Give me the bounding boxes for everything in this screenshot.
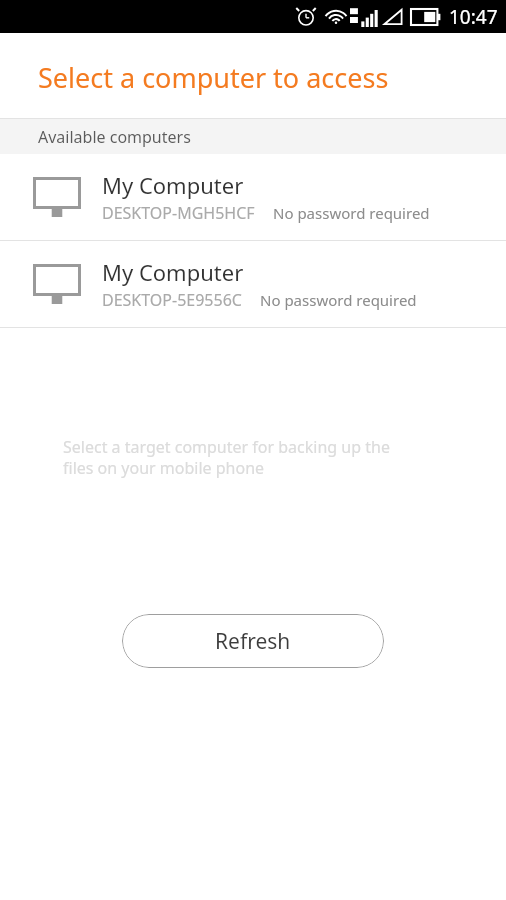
button[interactable]: My Computer bbox=[0, 154, 506, 240]
staticText: No password required bbox=[260, 290, 417, 310]
button[interactable]: My Computer bbox=[0, 241, 506, 327]
staticText: 10:47 bbox=[449, 4, 498, 30]
staticText: My Computer bbox=[102, 170, 244, 200]
button[interactable]: Refresh bbox=[122, 614, 384, 668]
staticText: DESKTOP-5E9556C bbox=[102, 289, 242, 311]
staticText: Select a computer to access bbox=[38, 59, 389, 96]
staticText: Refresh bbox=[215, 627, 291, 656]
staticText: No password required bbox=[273, 203, 430, 223]
staticText: DESKTOP-MGH5HCF bbox=[102, 202, 255, 224]
staticText: Select a target computer for backing up … bbox=[63, 436, 390, 479]
staticText: My Computer bbox=[102, 257, 244, 287]
staticText: Available computers bbox=[38, 126, 191, 148]
